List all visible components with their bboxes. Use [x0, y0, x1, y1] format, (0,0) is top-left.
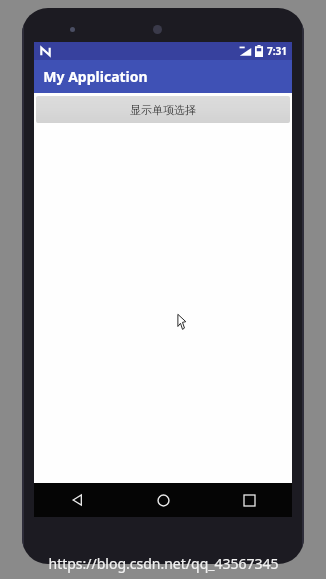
button[interactable]: Back	[34, 483, 120, 517]
staticText: https://blog.csdn.net/qq_43567345	[48, 554, 279, 573]
staticText: 显示单项选择	[130, 103, 196, 117]
button[interactable]: 显示单项选择	[36, 96, 290, 123]
staticText: My Application	[43, 67, 148, 86]
staticText: 7:31	[267, 44, 287, 58]
button[interactable]: Recent apps	[206, 483, 292, 517]
button[interactable]: Home	[120, 483, 206, 517]
